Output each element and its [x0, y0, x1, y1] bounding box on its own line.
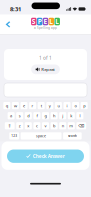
staticText: space [36, 133, 46, 138]
staticText: L [49, 17, 53, 26]
button[interactable]: space [21, 132, 61, 139]
button[interactable]: t [38, 102, 45, 109]
staticText: E [43, 17, 47, 26]
button[interactable]: Check Answer [7, 149, 84, 163]
staticText: z [19, 123, 21, 128]
button[interactable]: u [55, 102, 62, 109]
button[interactable]: w [12, 102, 19, 109]
staticText: ⇧ [8, 123, 12, 128]
button[interactable]: k [68, 112, 75, 119]
staticText: v [44, 123, 46, 128]
button[interactable]: q [3, 102, 10, 109]
staticText: ⌫ [78, 123, 84, 128]
staticText: d [27, 113, 29, 118]
button[interactable]: i [63, 102, 70, 109]
button[interactable]: 123 [9, 132, 19, 139]
button[interactable]: ⌫ [76, 122, 86, 129]
button[interactable]: s [16, 112, 23, 119]
staticText: m [69, 123, 73, 128]
button[interactable]: g [42, 112, 49, 119]
staticText: 8:31 [10, 5, 21, 13]
button[interactable]: c [33, 122, 40, 129]
button[interactable]: j [59, 112, 66, 119]
staticText: Check Answer [33, 153, 65, 159]
button[interactable]: m [68, 122, 75, 129]
staticText: e [23, 103, 25, 108]
button[interactable]: a [8, 112, 15, 119]
button[interactable]: d [25, 112, 32, 119]
staticText: s [19, 113, 21, 118]
staticText: k [70, 113, 72, 118]
staticText: b [53, 123, 55, 128]
staticText: L [55, 17, 59, 26]
button[interactable]: e [20, 102, 27, 109]
staticText: i [66, 103, 67, 108]
button[interactable]: Back [0, 14, 16, 34]
staticText: S [32, 17, 36, 26]
staticText: Repeat [41, 66, 55, 72]
staticText: 1 of 1 [39, 55, 52, 61]
staticText: x [27, 123, 29, 128]
button[interactable]: b [51, 122, 58, 129]
button[interactable]: p [81, 102, 88, 109]
staticText: a [10, 113, 12, 118]
staticText: y [49, 103, 51, 108]
staticText: a Spelling app [34, 26, 57, 30]
button[interactable]: z [16, 122, 23, 129]
button[interactable]: ⇧ [5, 122, 15, 129]
staticText: o [75, 103, 77, 108]
staticText: n [62, 123, 64, 128]
button[interactable]: y [46, 102, 53, 109]
staticText: 123 [11, 134, 17, 138]
staticText: f [36, 113, 37, 118]
staticText: c [36, 123, 38, 128]
staticText: w [14, 103, 17, 108]
staticText: t [41, 103, 42, 108]
staticText: P [38, 17, 42, 26]
staticText: q [6, 103, 8, 108]
staticText: search [68, 134, 77, 138]
button[interactable]: h [51, 112, 58, 119]
staticText: l [79, 113, 80, 118]
staticText: g [44, 113, 46, 118]
button[interactable]: x [25, 122, 32, 129]
staticText: u [57, 103, 59, 108]
button[interactable]: v [42, 122, 49, 129]
staticText: h [53, 113, 55, 118]
staticText: j [62, 113, 63, 118]
button[interactable]: n [59, 122, 66, 129]
button[interactable]: search [63, 132, 82, 139]
button[interactable]: l [76, 112, 83, 119]
button[interactable]: r [29, 102, 36, 109]
button[interactable]: f [33, 112, 40, 119]
staticText: p [83, 103, 85, 108]
staticText: r [32, 103, 34, 108]
button[interactable]: Repeat [31, 64, 60, 74]
button[interactable]: o [72, 102, 79, 109]
